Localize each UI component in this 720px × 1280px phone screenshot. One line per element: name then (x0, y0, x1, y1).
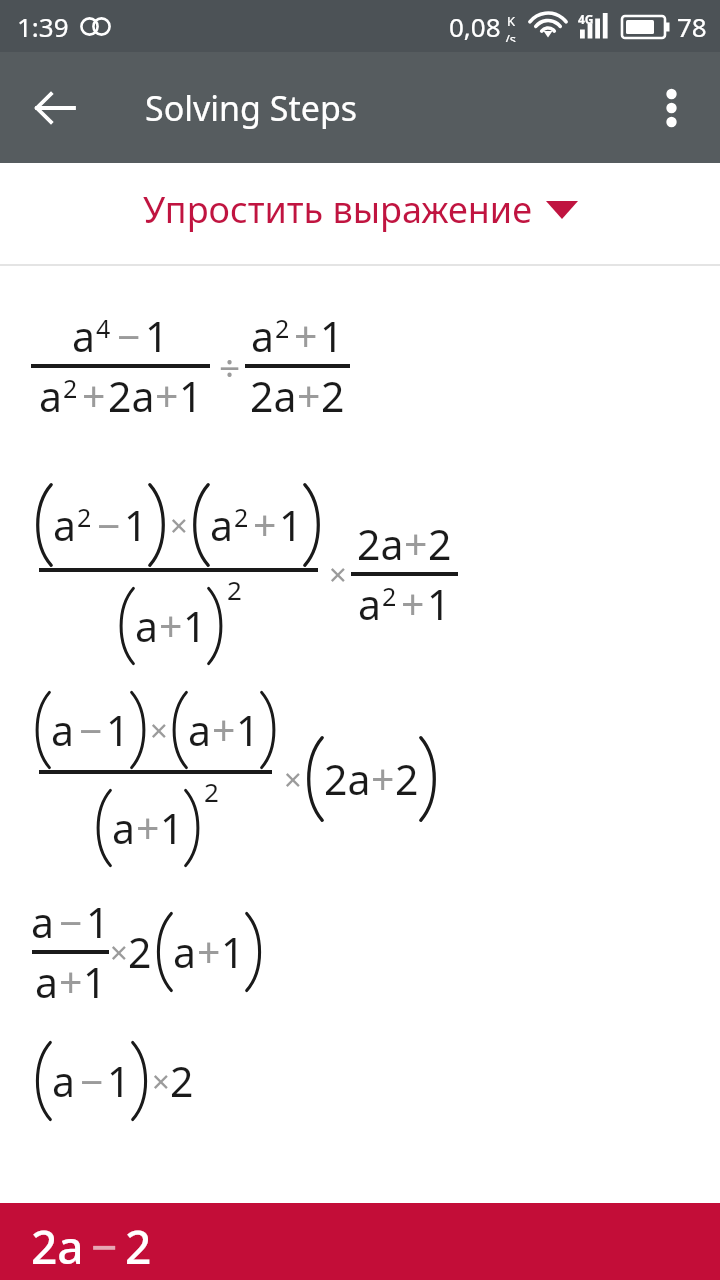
staticText: a (53, 497, 77, 553)
staticText: 2 (395, 751, 419, 807)
staticText: 2 (204, 774, 219, 809)
button[interactable]: a (0, 877, 720, 1027)
staticText: + (155, 368, 179, 424)
staticText: 1:39 (17, 9, 69, 44)
staticText: × (170, 504, 188, 546)
staticText: + (212, 702, 236, 758)
staticText: 1 (86, 894, 110, 950)
staticText: a (52, 1053, 76, 1109)
staticText: 2 (63, 371, 78, 405)
staticText: 4 (96, 311, 111, 345)
staticText: 2a (108, 368, 155, 424)
staticText: − (79, 702, 103, 758)
staticText: + (59, 954, 83, 1010)
staticText: 1 (427, 576, 451, 632)
staticText: a (188, 702, 212, 758)
staticText: + (401, 576, 425, 632)
staticText: 1 (183, 598, 207, 654)
staticText: × (110, 931, 128, 973)
staticText: 2a (31, 1215, 84, 1278)
staticText: 1 (179, 368, 203, 424)
staticText: 1 (236, 702, 260, 758)
staticText: 78 (677, 9, 707, 44)
staticText: 1 (221, 924, 245, 980)
staticText: /s (505, 30, 517, 42)
staticText: a (135, 598, 159, 654)
staticText: a (210, 497, 234, 553)
staticText: 1 (83, 954, 107, 1010)
staticText: 1 (106, 702, 130, 758)
button[interactable]: a (0, 266, 720, 466)
staticText: + (82, 368, 106, 424)
staticText: 2 (77, 500, 92, 534)
staticText: 2 (227, 572, 242, 607)
staticText: 4G (578, 11, 594, 27)
staticText: a (39, 368, 63, 424)
staticText: − (59, 894, 83, 950)
staticText: 2a (324, 751, 371, 807)
staticText: 2 (170, 1053, 194, 1109)
staticText: 0,08 (449, 9, 501, 44)
staticText: a (112, 800, 136, 856)
staticText: − (80, 1053, 104, 1109)
staticText: K (507, 12, 516, 30)
staticText: Solving Steps (145, 85, 358, 131)
button[interactable]: 2a (0, 1203, 720, 1280)
staticText: 2 (125, 1215, 152, 1278)
staticText: + (371, 751, 395, 807)
button[interactable]: a (0, 1027, 720, 1135)
staticText: × (284, 758, 302, 800)
button[interactable]: Navigate up (21, 74, 89, 142)
staticText: a (72, 308, 96, 364)
staticText: 2 (128, 924, 152, 980)
staticText: a (358, 576, 382, 632)
staticText: 1 (124, 497, 148, 553)
staticText: 2 (275, 311, 290, 345)
staticText: a (173, 924, 197, 980)
staticText: 1 (320, 308, 344, 364)
button[interactable]: a (0, 466, 720, 681)
staticText: + (294, 308, 318, 364)
staticText: a (31, 894, 55, 950)
staticText: 2 (321, 368, 345, 424)
staticText: + (197, 924, 221, 980)
staticText: a (35, 954, 59, 1010)
staticText: + (297, 368, 321, 424)
staticText: × (152, 1060, 170, 1102)
staticText: − (91, 1215, 118, 1278)
staticText: Упростить выражение (143, 185, 533, 234)
staticText: 2 (234, 500, 249, 534)
staticText: × (150, 709, 168, 751)
staticText: 2a (250, 368, 297, 424)
button[interactable]: a (0, 681, 720, 877)
staticText: 2 (382, 579, 397, 613)
button[interactable]: Упростить выражение (0, 163, 720, 264)
staticText: 1 (107, 1053, 131, 1109)
staticText: 2 (428, 516, 452, 572)
staticText: × (329, 553, 347, 595)
staticText: + (136, 800, 160, 856)
staticText: − (97, 497, 121, 553)
staticText: 2a (357, 516, 404, 572)
staticText: a (251, 308, 275, 364)
staticText: + (159, 598, 183, 654)
staticText: ÷ (219, 341, 241, 391)
staticText: 1 (279, 497, 303, 553)
staticText: + (404, 516, 428, 572)
button[interactable]: More options (639, 76, 703, 140)
staticText: a (51, 702, 75, 758)
staticText: − (117, 308, 141, 364)
staticText: + (253, 497, 277, 553)
staticText: 1 (145, 308, 169, 364)
staticText: 1 (160, 800, 184, 856)
